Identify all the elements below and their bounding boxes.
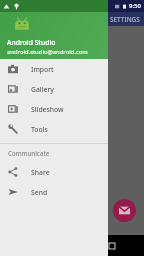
staticText: Share <box>31 168 50 177</box>
staticText: Communicate <box>8 149 50 157</box>
button[interactable]: Compose email <box>113 199 136 222</box>
staticText: Import <box>31 65 54 74</box>
button[interactable]: Send <box>0 182 108 202</box>
staticText: 9:50 <box>129 2 141 10</box>
button[interactable]: Tools <box>0 119 108 139</box>
staticText: android.studio@android.com <box>7 48 88 56</box>
button[interactable]: Slideshow <box>0 99 108 119</box>
staticText: Gallery <box>31 85 54 94</box>
button[interactable]: Recents <box>104 238 120 254</box>
button[interactable]: Share <box>0 162 108 182</box>
staticText: SETTINGS <box>110 15 140 24</box>
staticText: Slideshow <box>31 105 64 114</box>
button[interactable]: SETTINGS <box>110 15 140 24</box>
staticText: Send <box>31 188 48 197</box>
button[interactable]: Gallery <box>0 79 108 99</box>
button[interactable]: Import <box>0 59 108 79</box>
staticText: Android Studio <box>7 38 56 47</box>
staticText: Tools <box>31 125 48 134</box>
